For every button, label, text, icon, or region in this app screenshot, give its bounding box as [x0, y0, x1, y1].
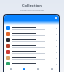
staticText: Curated lists of favourites	[0, 9, 64, 12]
button[interactable]: Tab	[4, 68, 17, 70]
button[interactable]	[4, 55, 59, 61]
button[interactable]	[4, 43, 59, 49]
button[interactable]	[4, 37, 59, 43]
button[interactable]: Tab	[31, 68, 45, 70]
button[interactable]	[4, 25, 59, 31]
button[interactable]	[4, 49, 59, 55]
button[interactable]	[4, 61, 59, 67]
staticText: Collection	[0, 3, 64, 8]
button[interactable]: Tab	[45, 68, 59, 70]
button[interactable]	[4, 31, 59, 37]
button[interactable]: Tab	[17, 68, 31, 70]
